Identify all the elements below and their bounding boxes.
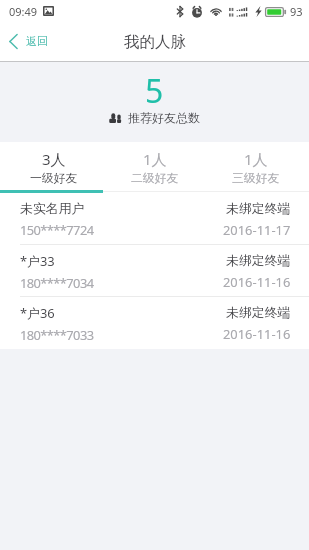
button[interactable]: 3人 — [3, 142, 104, 190]
staticText: 09:49 — [9, 4, 38, 19]
staticText: *户36 — [20, 304, 55, 322]
staticText: 未绑定终端 — [226, 253, 291, 269]
button[interactable]: *户36 — [0, 297, 309, 349]
staticText: 2016-11-16 — [223, 325, 291, 343]
button[interactable]: 1人 — [205, 142, 306, 190]
staticText: 我的人脉 — [124, 32, 186, 52]
staticText: 三级好友 — [232, 171, 280, 186]
staticText: 180****7034 — [20, 274, 94, 292]
staticText: 2016-11-17 — [223, 221, 291, 239]
staticText: 未实名用户 — [20, 201, 85, 217]
staticText: 1人 — [143, 149, 167, 169]
staticText: 1人 — [244, 149, 268, 169]
button[interactable]: *户33 — [0, 245, 309, 297]
button[interactable]: 1人 — [104, 142, 205, 190]
staticText: 3人 — [42, 149, 66, 169]
staticText: 5 — [145, 69, 164, 113]
staticText: 一级好友 — [30, 171, 78, 186]
staticText: 未绑定终端 — [226, 201, 291, 217]
staticText: 未绑定终端 — [226, 305, 291, 321]
staticText: 推荐好友总数 — [128, 110, 200, 125]
staticText: *户33 — [20, 252, 55, 270]
staticText: 2016-11-16 — [223, 273, 291, 291]
staticText: 二级好友 — [131, 171, 179, 186]
button[interactable]: 未实名用户 — [0, 193, 309, 245]
staticText: 150****7724 — [20, 221, 94, 239]
staticText: 返回 — [26, 34, 48, 48]
staticText: 180****7033 — [20, 326, 94, 344]
staticText: 93 — [290, 4, 303, 19]
button[interactable]: 返回 Back — [0, 21, 58, 61]
